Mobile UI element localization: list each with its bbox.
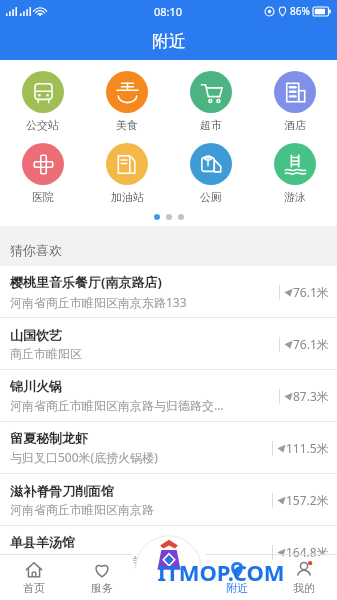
staticText: 76.1米 <box>293 284 329 300</box>
staticText: 美食 <box>116 118 138 132</box>
staticText: 08:10 <box>154 4 183 19</box>
staticText: 河南省商丘市睢阳区南京路与归德路交… <box>10 397 224 413</box>
button[interactable]: 山国饮艺 <box>0 318 337 369</box>
button[interactable]: 我的 <box>270 554 337 600</box>
staticText: 86% <box>290 4 310 18</box>
staticText: 河南省商丘市睢阳区南京路 <box>10 502 154 517</box>
button[interactable]: 医院 <box>0 140 85 207</box>
button[interactable]: 加油站 <box>85 140 169 207</box>
staticText: 公交站 <box>26 118 59 132</box>
staticText: 87.3米 <box>293 388 329 404</box>
staticText: 我的 <box>293 581 315 595</box>
staticText: 与归叉口500米(底捞火锅楼) <box>10 449 158 465</box>
button[interactable]: 酒店 <box>253 68 337 135</box>
staticText: 首页 <box>23 581 45 595</box>
staticText: 157.2米 <box>286 492 329 508</box>
staticText: 公厕 <box>200 190 222 204</box>
staticText: 河南省商丘市睢阳区南京东路133 <box>10 294 187 310</box>
staticText: 樱桃里音乐餐厅(南京路店) <box>10 273 162 291</box>
button[interactable]: 美食 <box>85 68 169 135</box>
button[interactable]: 服务 <box>68 554 136 600</box>
staticText: 留夏秘制龙虾 <box>10 430 88 446</box>
staticText: 猜你喜欢 <box>10 242 62 258</box>
button[interactable]: 公厕 <box>169 140 253 207</box>
button[interactable]: 锦川火锅 <box>0 370 337 421</box>
staticText: 商丘市睢阳区 <box>10 346 82 361</box>
staticText: 76.1米 <box>293 336 329 352</box>
button[interactable]: 首页 <box>0 554 68 600</box>
staticText: 服务 <box>91 581 113 595</box>
button[interactable]: 附近 <box>203 554 270 600</box>
staticText: 111.5米 <box>286 440 329 456</box>
staticText: 单县羊汤馆 <box>10 534 75 550</box>
staticText: 加油站 <box>111 190 144 204</box>
staticText: 游泳 <box>284 190 306 204</box>
staticText: 滋补脊骨刀削面馆 <box>10 483 114 499</box>
staticText: 附近 <box>152 31 186 52</box>
button[interactable]: 公交站 <box>0 68 85 135</box>
button[interactable]: 游泳 <box>253 140 337 207</box>
staticText: 山国饮艺 <box>10 327 62 343</box>
button[interactable]: 发现 <box>153 539 185 571</box>
button[interactable]: 樱桃里音乐餐厅(南京路店) <box>0 266 337 317</box>
staticText: 164.8米 <box>286 544 329 560</box>
button[interactable]: 留夏秘制龙虾 <box>0 422 337 473</box>
staticText: 酒店 <box>284 118 306 132</box>
staticText: 附近 <box>226 581 248 595</box>
staticText: 医院 <box>32 190 54 204</box>
staticText: 河南省商丘市睢阳区南京路南… <box>10 553 176 569</box>
button[interactable]: 滋补脊骨刀削面馆 <box>0 474 337 525</box>
staticText: 超市 <box>200 118 222 132</box>
button[interactable]: 超市 <box>169 68 253 135</box>
staticText: 锦川火锅 <box>10 378 62 394</box>
button[interactable]: 单县羊汤馆 <box>0 526 337 577</box>
staticText: ITMOP.COM <box>157 557 285 587</box>
